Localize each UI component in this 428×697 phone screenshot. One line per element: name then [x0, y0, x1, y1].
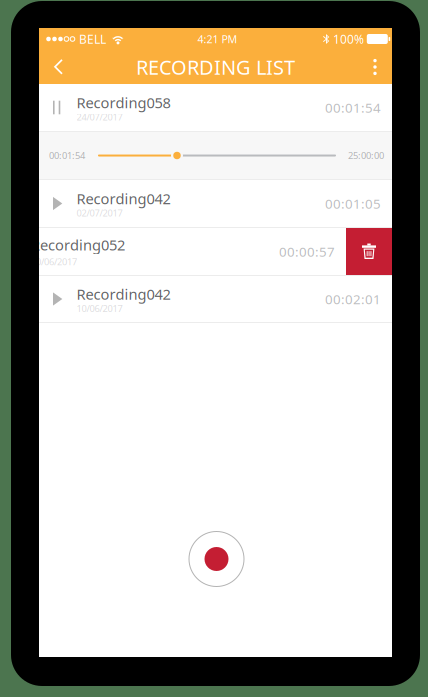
button[interactable]: Recording042 [39, 180, 392, 227]
button[interactable]: Delete [346, 228, 392, 275]
button[interactable]: Record [187, 531, 243, 587]
staticText: 24/07/2017 [76, 111, 122, 123]
staticText: 00:01:54 [325, 99, 381, 116]
staticText: 02/07/2017 [76, 207, 122, 219]
staticText: 25:00:00 [348, 149, 384, 162]
staticText: Recording052 [31, 235, 125, 255]
button[interactable]: Back [39, 50, 77, 84]
staticText: 00:02:01 [325, 290, 381, 308]
button[interactable]: Recording052 [39, 228, 346, 275]
staticText: Recording058 [76, 93, 170, 112]
staticText: 10/06/2017 [76, 302, 122, 315]
button[interactable]: Recording058 [39, 84, 392, 131]
staticText: 00:01:05 [325, 195, 381, 212]
button[interactable]: Recording042 [39, 276, 392, 322]
staticText: RECORDING LIST [136, 54, 295, 80]
button[interactable]: More options [358, 50, 392, 84]
staticText: 10/06/2017 [31, 255, 77, 268]
staticText: 00:01:54 [49, 149, 85, 162]
staticText: BELL [79, 31, 106, 47]
staticText: 4:21 PM [197, 32, 237, 46]
staticText: Recording042 [76, 284, 170, 304]
staticText: Recording042 [76, 189, 170, 208]
staticText: 100% [333, 31, 364, 47]
staticText: 00:00:57 [279, 243, 335, 260]
